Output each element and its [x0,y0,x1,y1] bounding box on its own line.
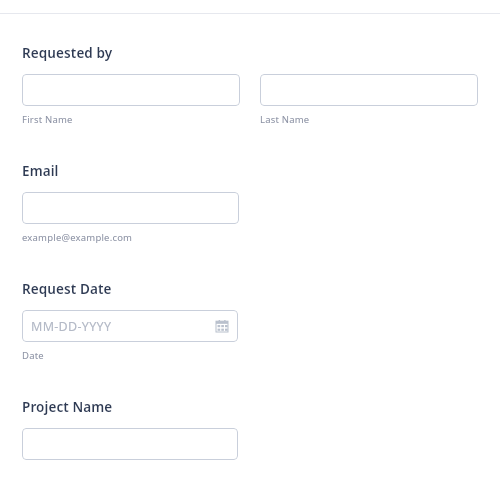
staticText: Project Name [22,398,113,416]
button[interactable]: Open calendar picker [215,319,229,333]
staticText: Email [22,162,59,180]
staticText: Requested by [22,44,113,62]
button[interactable] [22,428,238,460]
staticText: example@example.com [22,231,133,244]
staticText: Last Name [260,113,310,126]
staticText: First Name [22,113,73,126]
staticText: Request Date [22,280,112,298]
button[interactable] [22,74,240,106]
staticText: MM-DD-YYYY [31,318,215,335]
button[interactable]: MM-DD-YYYY [22,310,238,342]
button[interactable] [260,74,478,106]
staticText: Date [22,349,44,362]
button[interactable] [22,192,239,224]
